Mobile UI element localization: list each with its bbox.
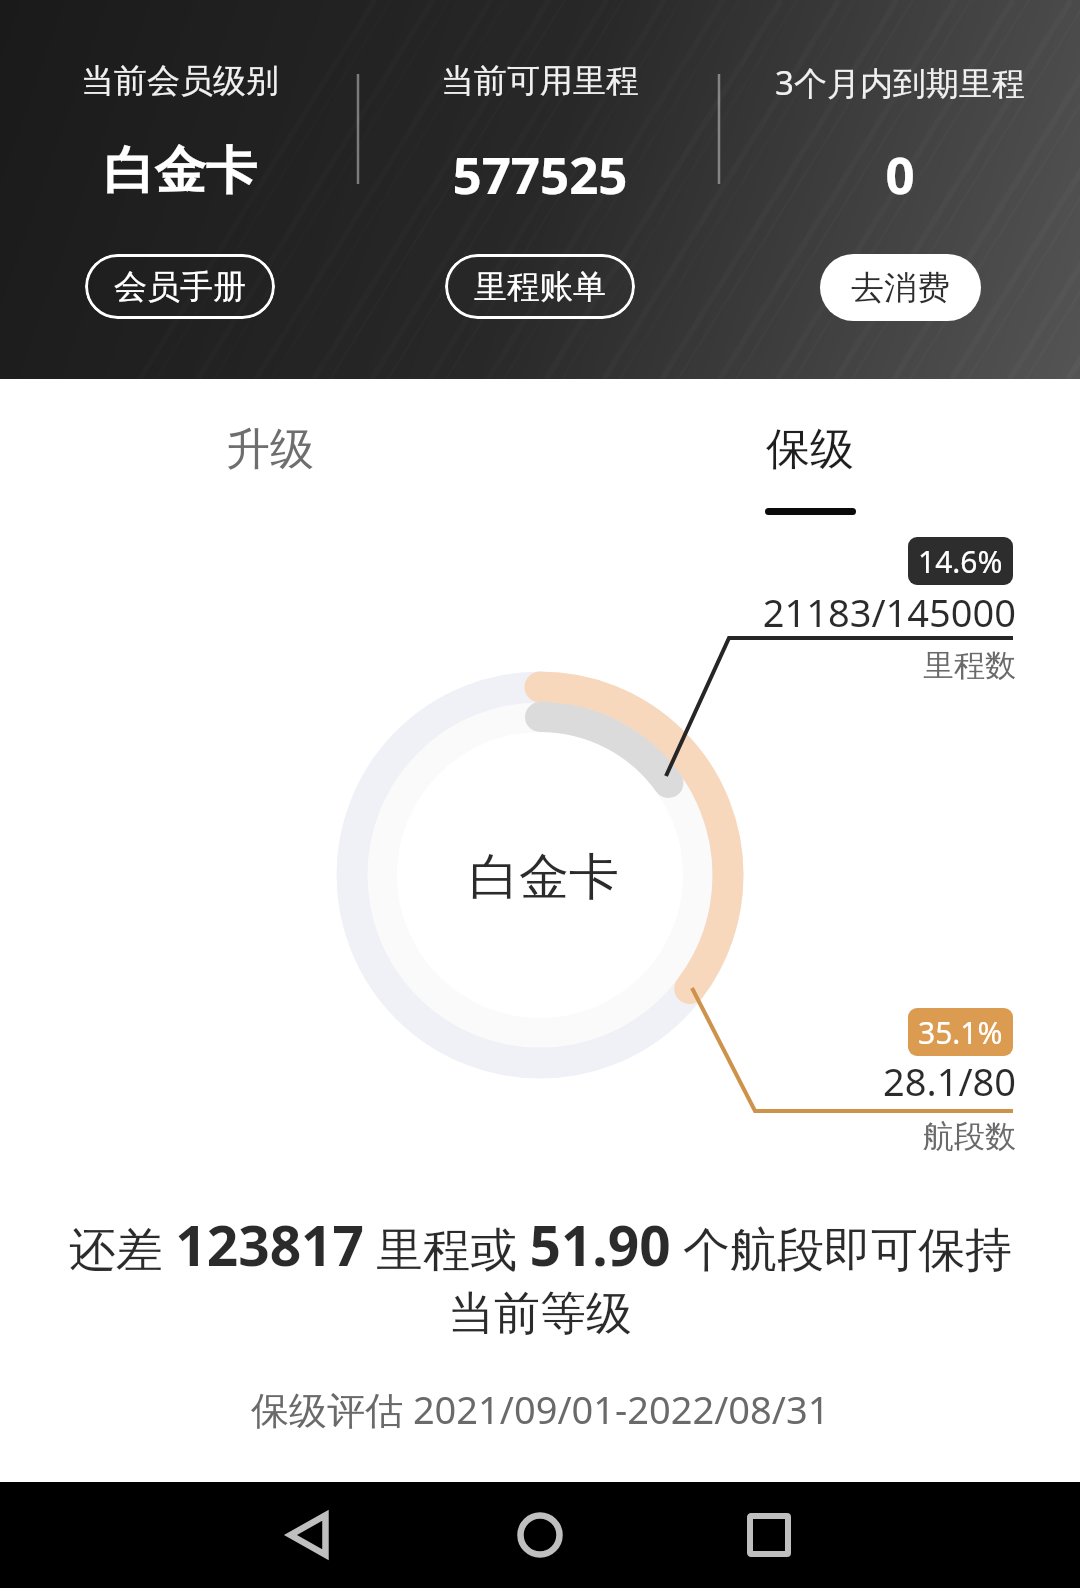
staticText: 21183/145000: [616, 586, 1016, 638]
staticText: 里程账单: [474, 266, 606, 308]
staticText: 当前等级: [448, 1285, 632, 1343]
staticText: 3个月内到期里程: [720, 60, 1080, 105]
staticText: 保级评估 2021/09/01-2022/08/31: [251, 1383, 830, 1435]
staticText: 28.1/80: [616, 1055, 1016, 1107]
button[interactable]: 会员手册: [85, 254, 275, 319]
staticText: 会员手册: [114, 266, 246, 308]
button[interactable]: 升级: [0, 379, 540, 524]
button[interactable]: Recent apps: [679, 1482, 859, 1588]
staticText: 保级: [766, 422, 854, 477]
staticText: 当前会员级别: [0, 60, 360, 102]
button[interactable]: 35.1%: [908, 1008, 1013, 1056]
staticText: 还差 123817 里程或 51.90 个航段即可保持: [69, 1207, 1012, 1282]
staticText: 白金卡: [0, 139, 360, 203]
staticText: 里程数: [616, 646, 1016, 685]
staticText: 航段数: [616, 1117, 1016, 1156]
staticText: 577525: [360, 139, 720, 208]
staticText: 去消费: [851, 267, 950, 309]
staticText: 当前可用里程: [360, 60, 720, 102]
button[interactable]: 14.6%: [908, 537, 1013, 585]
button[interactable]: 去消费: [820, 254, 981, 321]
button[interactable]: 里程账单: [445, 254, 635, 319]
button[interactable]: Home: [450, 1482, 630, 1588]
staticText: 白金卡: [469, 846, 619, 909]
button[interactable]: Back: [218, 1482, 398, 1588]
button[interactable]: 保级: [540, 379, 1080, 524]
staticText: 0: [720, 139, 1080, 208]
staticText: 35.1%: [918, 1012, 1003, 1053]
staticText: 14.6%: [918, 541, 1003, 582]
staticText: 升级: [226, 422, 314, 477]
